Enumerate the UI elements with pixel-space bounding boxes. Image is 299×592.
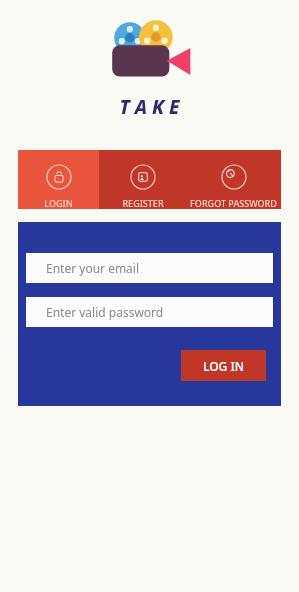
button[interactable]: LOG IN <box>181 350 266 381</box>
button[interactable]: FORGOT PASSWORD <box>186 150 281 209</box>
other: REGISTER <box>130 164 156 190</box>
button[interactable]: Enter your email <box>26 253 273 283</box>
staticText: T A K E <box>119 94 180 120</box>
button[interactable]: Enter valid password <box>26 297 273 327</box>
staticText: Enter your email <box>46 260 140 276</box>
other: LOGIN <box>46 164 72 190</box>
staticText: LOGIN <box>44 197 73 209</box>
staticText: Enter valid password <box>46 304 164 320</box>
button[interactable]: LOGIN <box>18 150 99 209</box>
staticText: FORGOT PASSWORD <box>190 197 277 209</box>
staticText: LOG IN <box>203 358 244 374</box>
staticText: REGISTER <box>122 197 164 209</box>
button[interactable]: REGISTER <box>99 150 186 209</box>
other: FORGOT PASSWORD <box>221 164 247 190</box>
